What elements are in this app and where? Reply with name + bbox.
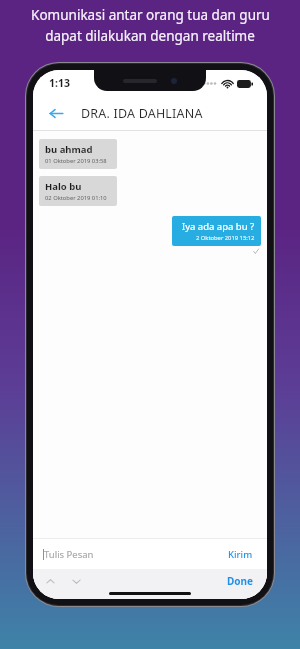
button[interactable]: bu ahmad bbox=[39, 139, 117, 169]
button[interactable]: Next field bbox=[67, 572, 85, 590]
staticText: 2 Oktober 2019 13:12 bbox=[196, 234, 255, 242]
button[interactable]: Done bbox=[224, 571, 257, 591]
staticText: Done bbox=[227, 574, 254, 588]
button[interactable]: Back bbox=[41, 98, 71, 128]
staticText: 02 Oktober 2019 01:10 bbox=[45, 194, 107, 202]
staticText: Halo bu bbox=[45, 180, 82, 193]
staticText: Iya ada apa bu ? bbox=[182, 220, 255, 233]
staticText: Komunikasi antar orang tua dan guru bbox=[31, 6, 270, 24]
staticText: 01 Oktober 2019 03:58 bbox=[45, 157, 107, 165]
staticText: dapat dilakukan dengan realtime bbox=[45, 27, 255, 45]
button[interactable]: Halo bu bbox=[39, 176, 117, 206]
staticText: Tulis Pesan bbox=[44, 548, 94, 561]
button[interactable]: Kirim bbox=[224, 544, 257, 565]
staticText: bu ahmad bbox=[45, 143, 93, 156]
button[interactable]: Iya ada apa bu ? bbox=[172, 216, 261, 246]
staticText: 1:13 bbox=[49, 76, 70, 90]
staticText: Kirim bbox=[228, 548, 253, 561]
button[interactable]: Tulis Pesan bbox=[43, 548, 224, 561]
button[interactable]: Previous field bbox=[41, 572, 59, 590]
staticText: DRA. IDA DAHLIANA bbox=[81, 105, 203, 122]
